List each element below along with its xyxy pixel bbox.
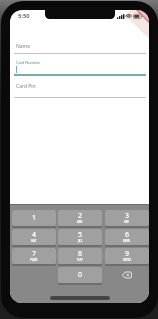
button[interactable] [105, 267, 149, 283]
staticText: MNO [123, 239, 131, 243]
staticText: ABC [77, 220, 83, 224]
staticText: 6 [125, 230, 130, 240]
button[interactable]: Name [14, 39, 146, 55]
button[interactable]: 1 [12, 210, 56, 226]
staticText: DEF [124, 220, 130, 224]
staticText: PQRS [30, 258, 38, 262]
button[interactable]: 0 [58, 267, 102, 283]
button[interactable]: 5 [58, 229, 102, 245]
button[interactable]: 2 [58, 210, 102, 226]
staticText: GHI [31, 239, 37, 243]
staticText: 7 [32, 249, 37, 259]
staticText: JKL [78, 239, 83, 243]
button[interactable]: 7 [12, 248, 56, 264]
staticText: WXYZ [123, 258, 131, 262]
staticText: 5:50 [18, 12, 30, 20]
button[interactable]: 4 [12, 229, 56, 245]
staticText: Card Number [16, 60, 41, 65]
button[interactable]: 8 [58, 248, 102, 264]
staticText: 0 [78, 270, 83, 280]
staticText: TUV [77, 258, 83, 262]
staticText: 8 [78, 249, 83, 259]
button[interactable]: 3 [105, 210, 149, 226]
staticText: 1 [32, 213, 37, 223]
staticText: Name [16, 43, 31, 50]
button[interactable]: Card Number [14, 59, 146, 77]
staticText: 4 [32, 230, 37, 240]
button[interactable]: 9 [105, 248, 149, 264]
staticText: Card Pin [16, 83, 36, 90]
staticText: 9 [125, 249, 130, 259]
staticText: 5 [78, 230, 83, 240]
staticText: 3 [125, 211, 130, 221]
button[interactable]: 6 [105, 229, 149, 245]
button[interactable]: Card Pin [14, 81, 146, 98]
staticText: 2 [78, 211, 83, 221]
